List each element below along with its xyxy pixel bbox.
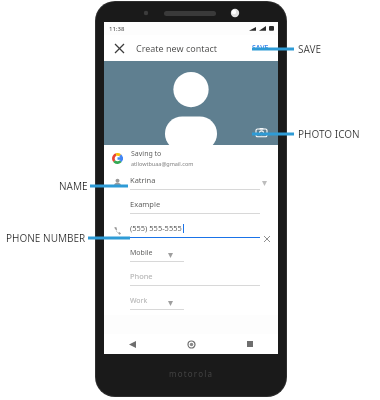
staticText: PHONE NUMBER: [6, 231, 86, 245]
button[interactable]: Clear: [262, 234, 272, 244]
button[interactable]: Add photo: [254, 125, 268, 139]
button[interactable]: Example: [104, 195, 278, 219]
staticText: Example: [130, 199, 161, 209]
button[interactable]: Mobile: [104, 243, 278, 267]
staticText: Create new contact: [136, 42, 218, 54]
staticText: Work: [130, 296, 148, 306]
staticText: (555) 555-5555: [130, 223, 182, 233]
staticText: Katrina: [130, 175, 156, 185]
staticText: SAVE: [252, 43, 269, 53]
staticText: Phone: [130, 271, 153, 281]
staticText: 11:38: [109, 25, 125, 33]
button[interactable]: Work: [104, 291, 278, 315]
button[interactable]: Close: [111, 40, 127, 56]
button[interactable]: Katrina: [104, 171, 278, 195]
button[interactable]: Back: [124, 336, 140, 352]
staticText: NAME: [59, 179, 88, 193]
staticText: SAVE: [298, 42, 322, 56]
staticText: Saving to: [131, 149, 162, 159]
button[interactable]: Recent apps: [242, 336, 258, 352]
button[interactable]: (555) 555-5555: [104, 219, 278, 243]
staticText: motorola: [169, 368, 214, 379]
button[interactable]: Phone: [104, 267, 278, 291]
button[interactable]: Home: [183, 336, 199, 352]
button[interactable]: SAVE: [250, 40, 271, 56]
staticText: PHOTO ICON: [298, 127, 360, 141]
staticText: Mobile: [130, 248, 153, 258]
staticText: atllowtbuaa@gmail.com: [131, 160, 194, 167]
